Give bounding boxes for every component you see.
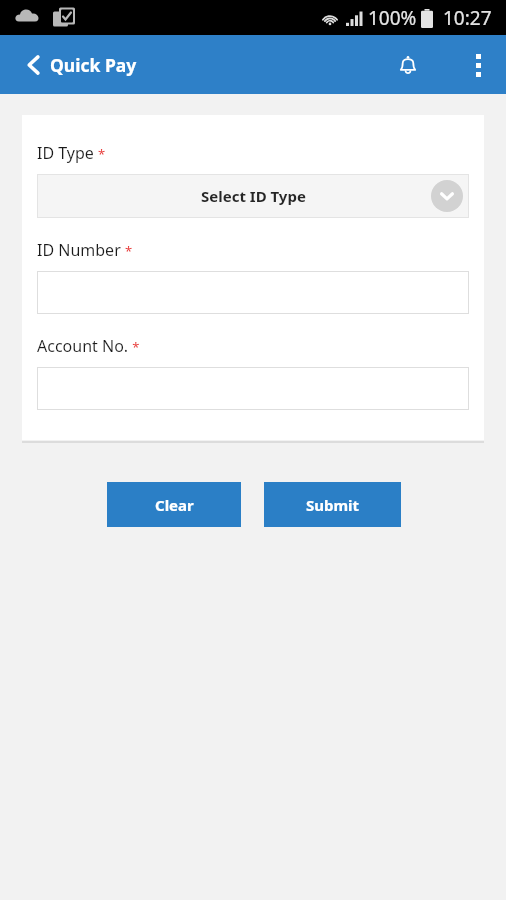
button[interactable]: Back bbox=[10, 41, 58, 89]
staticText: 100% bbox=[368, 5, 417, 31]
staticText: Submit bbox=[306, 495, 360, 515]
staticText: Account No. * bbox=[37, 335, 140, 357]
button[interactable]: Notifications bbox=[384, 41, 432, 89]
staticText: 10:27 bbox=[443, 5, 492, 31]
staticText: Clear bbox=[155, 495, 194, 515]
button[interactable]: More options bbox=[456, 43, 500, 87]
staticText: ID Number * bbox=[37, 239, 133, 261]
button[interactable] bbox=[37, 367, 469, 410]
button[interactable]: Clear bbox=[107, 482, 241, 527]
button[interactable] bbox=[37, 271, 469, 314]
button[interactable]: Select ID Type bbox=[37, 174, 469, 218]
button[interactable]: Submit bbox=[264, 482, 401, 527]
staticText: ID Type * bbox=[37, 142, 106, 164]
staticText: Select ID Type bbox=[201, 186, 306, 206]
staticText: Quick Pay bbox=[50, 53, 137, 77]
